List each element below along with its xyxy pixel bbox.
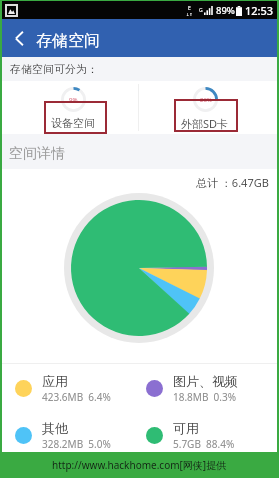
- staticText: 5.7GB 88.4%: [173, 437, 235, 451]
- staticText: 89%: [216, 4, 235, 17]
- staticText: 9%: [69, 96, 78, 104]
- staticText: E: [188, 5, 191, 12]
- button[interactable]: 图片、视频: [146, 371, 270, 405]
- button[interactable]: Back: [7, 19, 31, 57]
- staticText: 外部SD卡: [181, 116, 229, 131]
- staticText: http://www.hackhome.com[网侠]提供: [52, 458, 227, 472]
- button[interactable]: 应用: [15, 371, 139, 405]
- staticText: 空间详情: [9, 145, 65, 163]
- staticText: ↓↑: [186, 12, 193, 17]
- staticText: 328.2MB 5.0%: [42, 437, 111, 451]
- staticText: 存储空间可分为：: [10, 62, 98, 76]
- button[interactable]: 26%: [161, 81, 249, 134]
- staticText: 其他: [42, 420, 68, 436]
- staticText: 可用: [173, 420, 199, 436]
- staticText: G: [199, 7, 203, 14]
- button[interactable]: 可用: [146, 418, 270, 452]
- staticText: 图片、视频: [173, 373, 238, 389]
- staticText: 18.8MB 0.3%: [173, 390, 237, 404]
- button[interactable]: 其他: [15, 418, 139, 452]
- staticText: 26%: [200, 96, 212, 104]
- staticText: 设备空间: [51, 116, 95, 130]
- staticText: 总计 ：6.47GB: [196, 175, 269, 190]
- staticText: 12:53: [245, 3, 274, 18]
- button[interactable]: 9%: [29, 81, 117, 134]
- staticText: 存储空间: [36, 31, 100, 51]
- staticText: 423.6MB 6.4%: [42, 390, 111, 404]
- staticText: 应用: [42, 373, 68, 389]
